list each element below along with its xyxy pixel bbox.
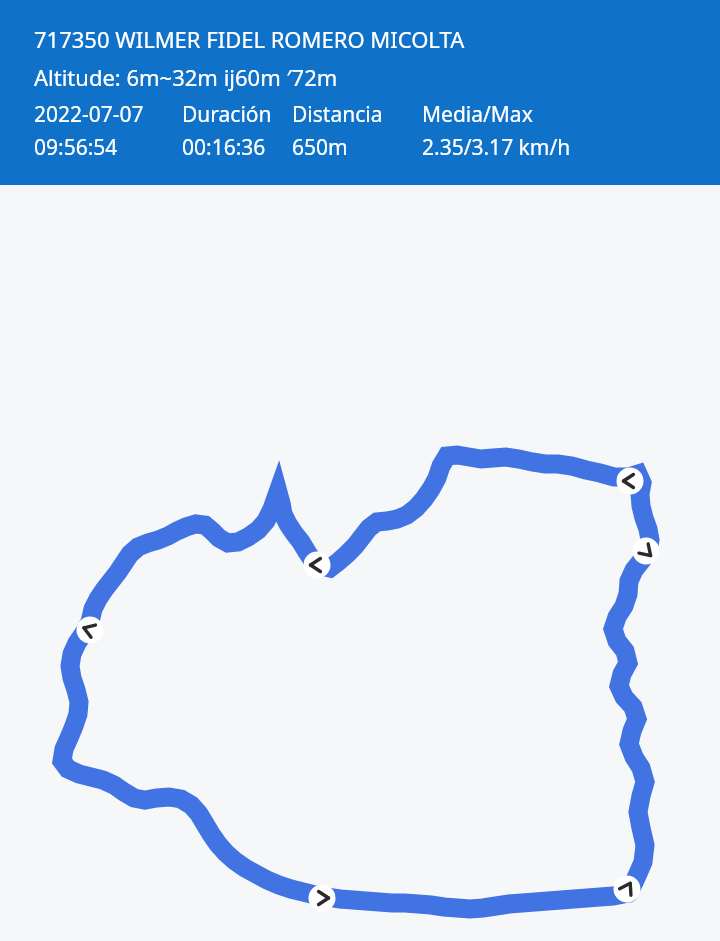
staticText: 717350 WILMER FIDEL ROMERO MICOLTA: [34, 24, 465, 54]
staticText: Duración: [182, 100, 272, 129]
staticText: 2.35/3.17 km/h: [422, 133, 571, 162]
staticText: 650m: [292, 133, 348, 162]
staticText: 00:16:36: [182, 133, 266, 162]
staticText: Media/Max: [422, 100, 533, 129]
button[interactable]: Track map: [0, 185, 720, 941]
button[interactable]: 717350 WILMER FIDEL ROMERO MICOLTA: [0, 0, 720, 185]
staticText: Distancia: [292, 100, 383, 129]
staticText: Altitude: 6m~32m ij60m ′72m: [34, 62, 338, 92]
staticText: 09:56:54: [34, 133, 118, 162]
staticText: 2022-07-07: [34, 100, 144, 129]
